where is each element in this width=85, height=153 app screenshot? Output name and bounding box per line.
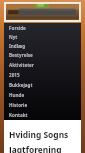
button[interactable]: 2015 [4, 70, 81, 80]
button[interactable]: Indlæg [4, 41, 81, 50]
button[interactable]: Hviding Sogns Jagtforening banner [6, 4, 79, 20]
staticText: Hunde [9, 92, 25, 98]
staticText: Forside [9, 25, 26, 31]
staticText: Nyt [9, 34, 18, 40]
staticText: 2015 [9, 72, 20, 78]
button[interactable]: Bukkejagt [4, 80, 81, 90]
button[interactable]: Kontakt [4, 110, 81, 120]
staticText: Bukkejagt [9, 82, 33, 88]
button[interactable]: Aktiviteter [4, 60, 81, 70]
staticText: Historie [9, 102, 28, 108]
button[interactable]: Bestyrelse [4, 50, 81, 60]
staticText: Indlæg [9, 43, 26, 49]
staticText: Kontakt [9, 112, 28, 118]
staticText: Aktiviteter [9, 62, 34, 68]
button[interactable]: Forside [4, 23, 81, 32]
staticText: Bestyrelse [9, 52, 33, 58]
button[interactable]: Hunde [4, 90, 81, 100]
button[interactable]: Historie [4, 100, 81, 110]
staticText: Hviding Sogns [9, 129, 69, 140]
staticText: Jagtforening 1942 [9, 144, 77, 153]
button[interactable]: Nyt [4, 32, 81, 41]
